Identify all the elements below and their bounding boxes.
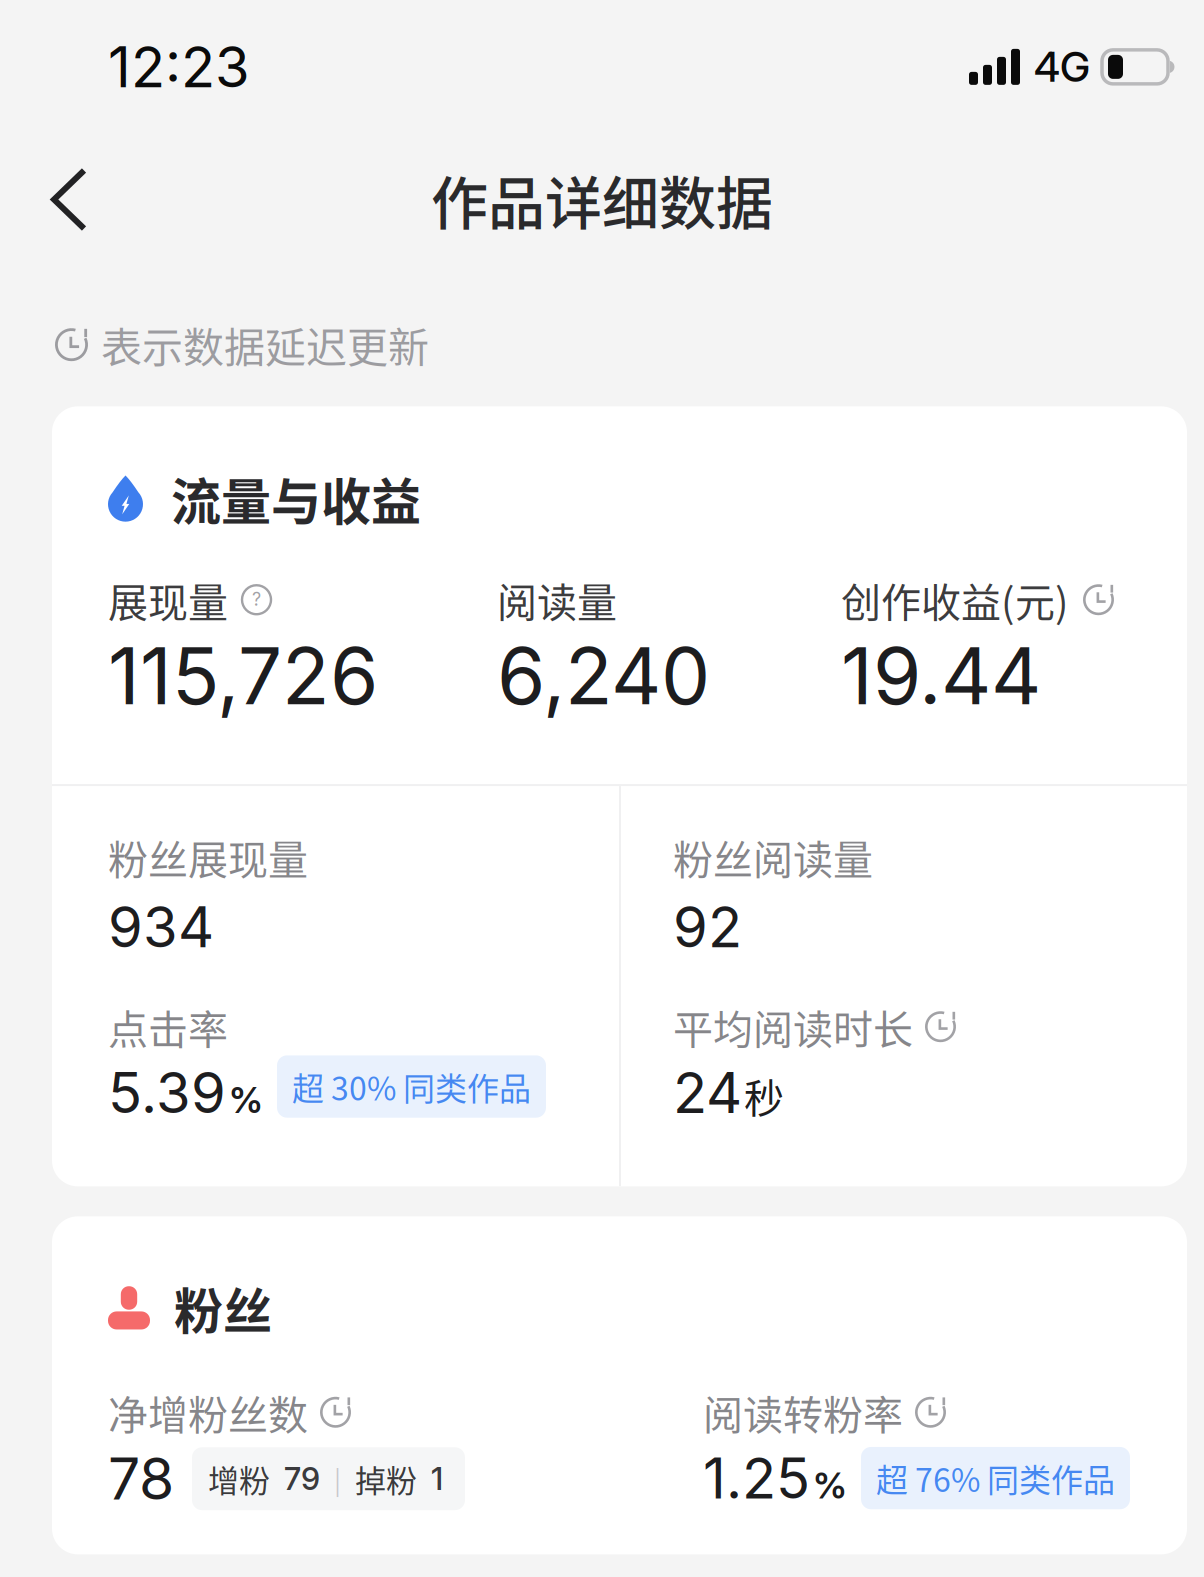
staticText: 19.44 xyxy=(841,629,1041,723)
staticText: 5.39 xyxy=(108,1059,226,1126)
staticText: 78 xyxy=(108,1444,174,1513)
staticText: 平均阅读时长 xyxy=(673,998,913,1056)
staticText: 12:23 xyxy=(108,33,250,101)
staticText: 点击率 xyxy=(108,998,228,1056)
staticText: 秒 xyxy=(744,1066,784,1124)
staticText: 1.25 xyxy=(703,1444,810,1512)
button[interactable]: Back xyxy=(0,150,118,248)
staticText: 作品详细数据 xyxy=(431,158,773,241)
staticText: 净增粉丝数 xyxy=(108,1383,308,1441)
staticText: % xyxy=(229,1078,263,1122)
staticText: 粉丝阅读量 xyxy=(673,828,873,886)
staticText: 115,726 xyxy=(108,629,378,723)
staticText: 92 xyxy=(673,893,742,961)
staticText: 增粉 xyxy=(208,1456,270,1501)
staticText: 934 xyxy=(108,893,214,961)
staticText: 阅读量 xyxy=(497,571,617,629)
staticText: 掉粉 xyxy=(355,1456,417,1501)
staticText: 1 xyxy=(431,1460,443,1497)
staticText: 表示数据延迟更新 xyxy=(101,315,429,374)
staticText: 超 30% 同类作品 xyxy=(292,1063,531,1110)
staticText: 粉丝展现量 xyxy=(108,828,308,886)
staticText: 6,240 xyxy=(497,629,710,723)
staticText: 79 xyxy=(284,1460,320,1497)
staticText: ? xyxy=(252,588,261,610)
staticText: 流量与收益 xyxy=(171,462,421,535)
staticText: 4G xyxy=(1034,42,1090,92)
staticText: 超 76% 同类作品 xyxy=(876,1455,1115,1501)
staticText: 24 xyxy=(673,1059,742,1126)
staticText: % xyxy=(813,1464,847,1507)
staticText: 展现量 xyxy=(108,571,228,629)
button[interactable]: What is impressions xyxy=(242,585,271,614)
staticText: 创作收益(元) xyxy=(841,571,1069,629)
staticText: | xyxy=(334,1460,341,1497)
staticText: 粉丝 xyxy=(174,1272,272,1343)
staticText: 阅读转粉率 xyxy=(703,1383,903,1441)
